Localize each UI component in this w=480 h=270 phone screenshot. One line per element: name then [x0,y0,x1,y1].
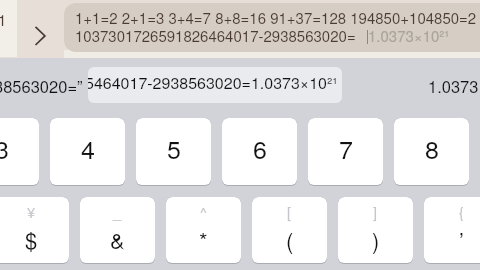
staticText: 3 [0,130,9,166]
button[interactable]: [ [252,197,327,264]
staticText: ¥ [27,201,36,222]
staticText: 38563020=” [0,74,83,98]
button[interactable]: 1+1=2 2+1=3 3+4=7 8+8=16 91+37=128 19485… [64,3,480,52]
staticText: 1 [0,9,7,30]
button[interactable]: Expand suggestions [28,15,56,50]
staticText: 1+1=2 2+1=3 3+4=7 8+8=16 91+37=128 19485… [75,7,477,28]
button[interactable]: { [424,197,480,264]
staticText: [ [287,201,292,222]
button[interactable]: ¥ [0,197,69,264]
staticText: 1037301726591826464017-2938563020= [75,25,356,46]
staticText: & [110,224,125,256]
staticText: _ [113,201,122,222]
button[interactable]: _ [80,197,155,264]
button[interactable]: 7 [308,118,383,186]
button[interactable]: 4 [50,118,125,186]
staticText: 1.0373×10²¹ [368,25,450,46]
button[interactable]: 5 [136,118,211,186]
staticText: 6 [253,130,267,166]
staticText: ( [286,224,294,256]
staticText: * [199,224,208,256]
button[interactable]: 8 [394,118,469,186]
staticText: ) [372,224,380,256]
button[interactable]: 3 [0,118,39,186]
button[interactable]: 6 [222,118,297,186]
staticText: ^ [200,201,207,222]
staticText: $ [25,224,38,256]
staticText: 5 [167,130,181,166]
button[interactable]: 5464017-2938563020=1.0373×10²¹ [88,67,342,103]
staticText: ’ [459,224,464,256]
staticText: 1.0373× [428,74,480,98]
button[interactable]: ] [338,197,413,264]
staticText: 5464017-2938563020=1.0373×10²¹ [88,71,338,94]
staticText: 4 [81,130,95,166]
staticText: ] [373,201,378,222]
button[interactable]: ^ [166,197,241,264]
staticText: { [459,201,464,222]
staticText: 7 [339,130,353,166]
staticText: 8 [425,130,439,166]
